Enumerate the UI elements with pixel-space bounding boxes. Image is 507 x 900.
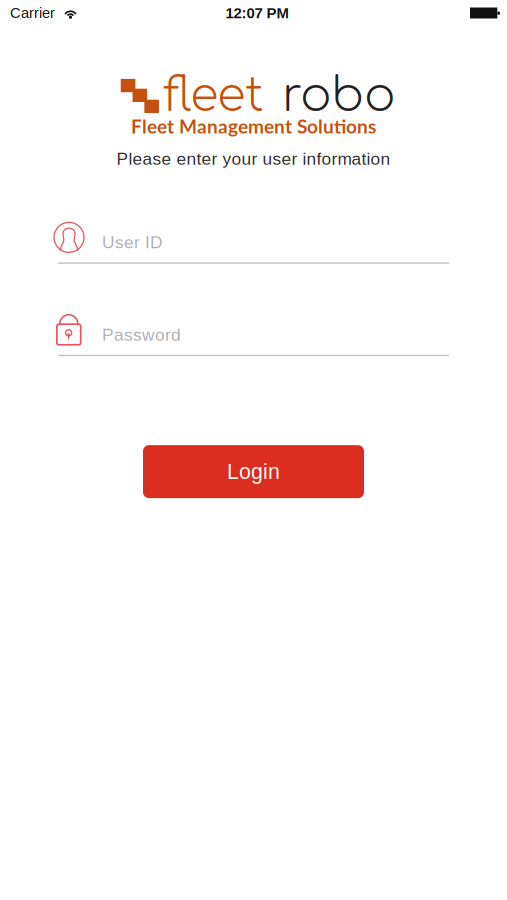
staticText: Login xyxy=(227,460,280,483)
button[interactable]: User ID xyxy=(58,221,449,264)
staticText: fleet xyxy=(162,70,264,122)
button[interactable]: Login xyxy=(143,445,364,498)
staticText: Fleet Management Solutions xyxy=(131,115,376,137)
staticText: Please enter your user information xyxy=(116,149,390,168)
staticText: 12:07 PM xyxy=(225,5,288,21)
staticText: User ID xyxy=(102,233,163,252)
button[interactable]: Password xyxy=(58,314,449,356)
staticText: Carrier xyxy=(10,5,55,21)
staticText: Password xyxy=(102,325,181,344)
staticText: robo xyxy=(282,70,395,122)
